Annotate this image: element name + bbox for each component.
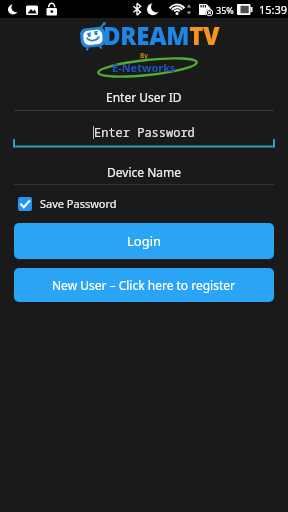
staticText: DREAMTV (103, 19, 220, 52)
button[interactable]: New User – Click here to register (14, 268, 274, 302)
button[interactable]: Enter User ID (0, 88, 288, 106)
button[interactable]: Enter Password (0, 123, 288, 141)
staticText: 15:39 (259, 2, 288, 17)
button[interactable]: Save Password (18, 196, 117, 211)
staticText: By (140, 51, 149, 60)
staticText: 35% (216, 4, 234, 16)
staticText: Device Name (107, 164, 181, 180)
staticText: Enter Password (94, 124, 195, 140)
staticText: Enter User ID (106, 89, 182, 105)
button[interactable]: Device Name (0, 163, 288, 181)
staticText: Save Password (40, 196, 117, 211)
staticText: E-Networks (112, 60, 176, 75)
staticText: New User – Click here to register (52, 277, 236, 293)
button[interactable]: Login (14, 223, 274, 259)
staticText: Login (127, 232, 162, 250)
